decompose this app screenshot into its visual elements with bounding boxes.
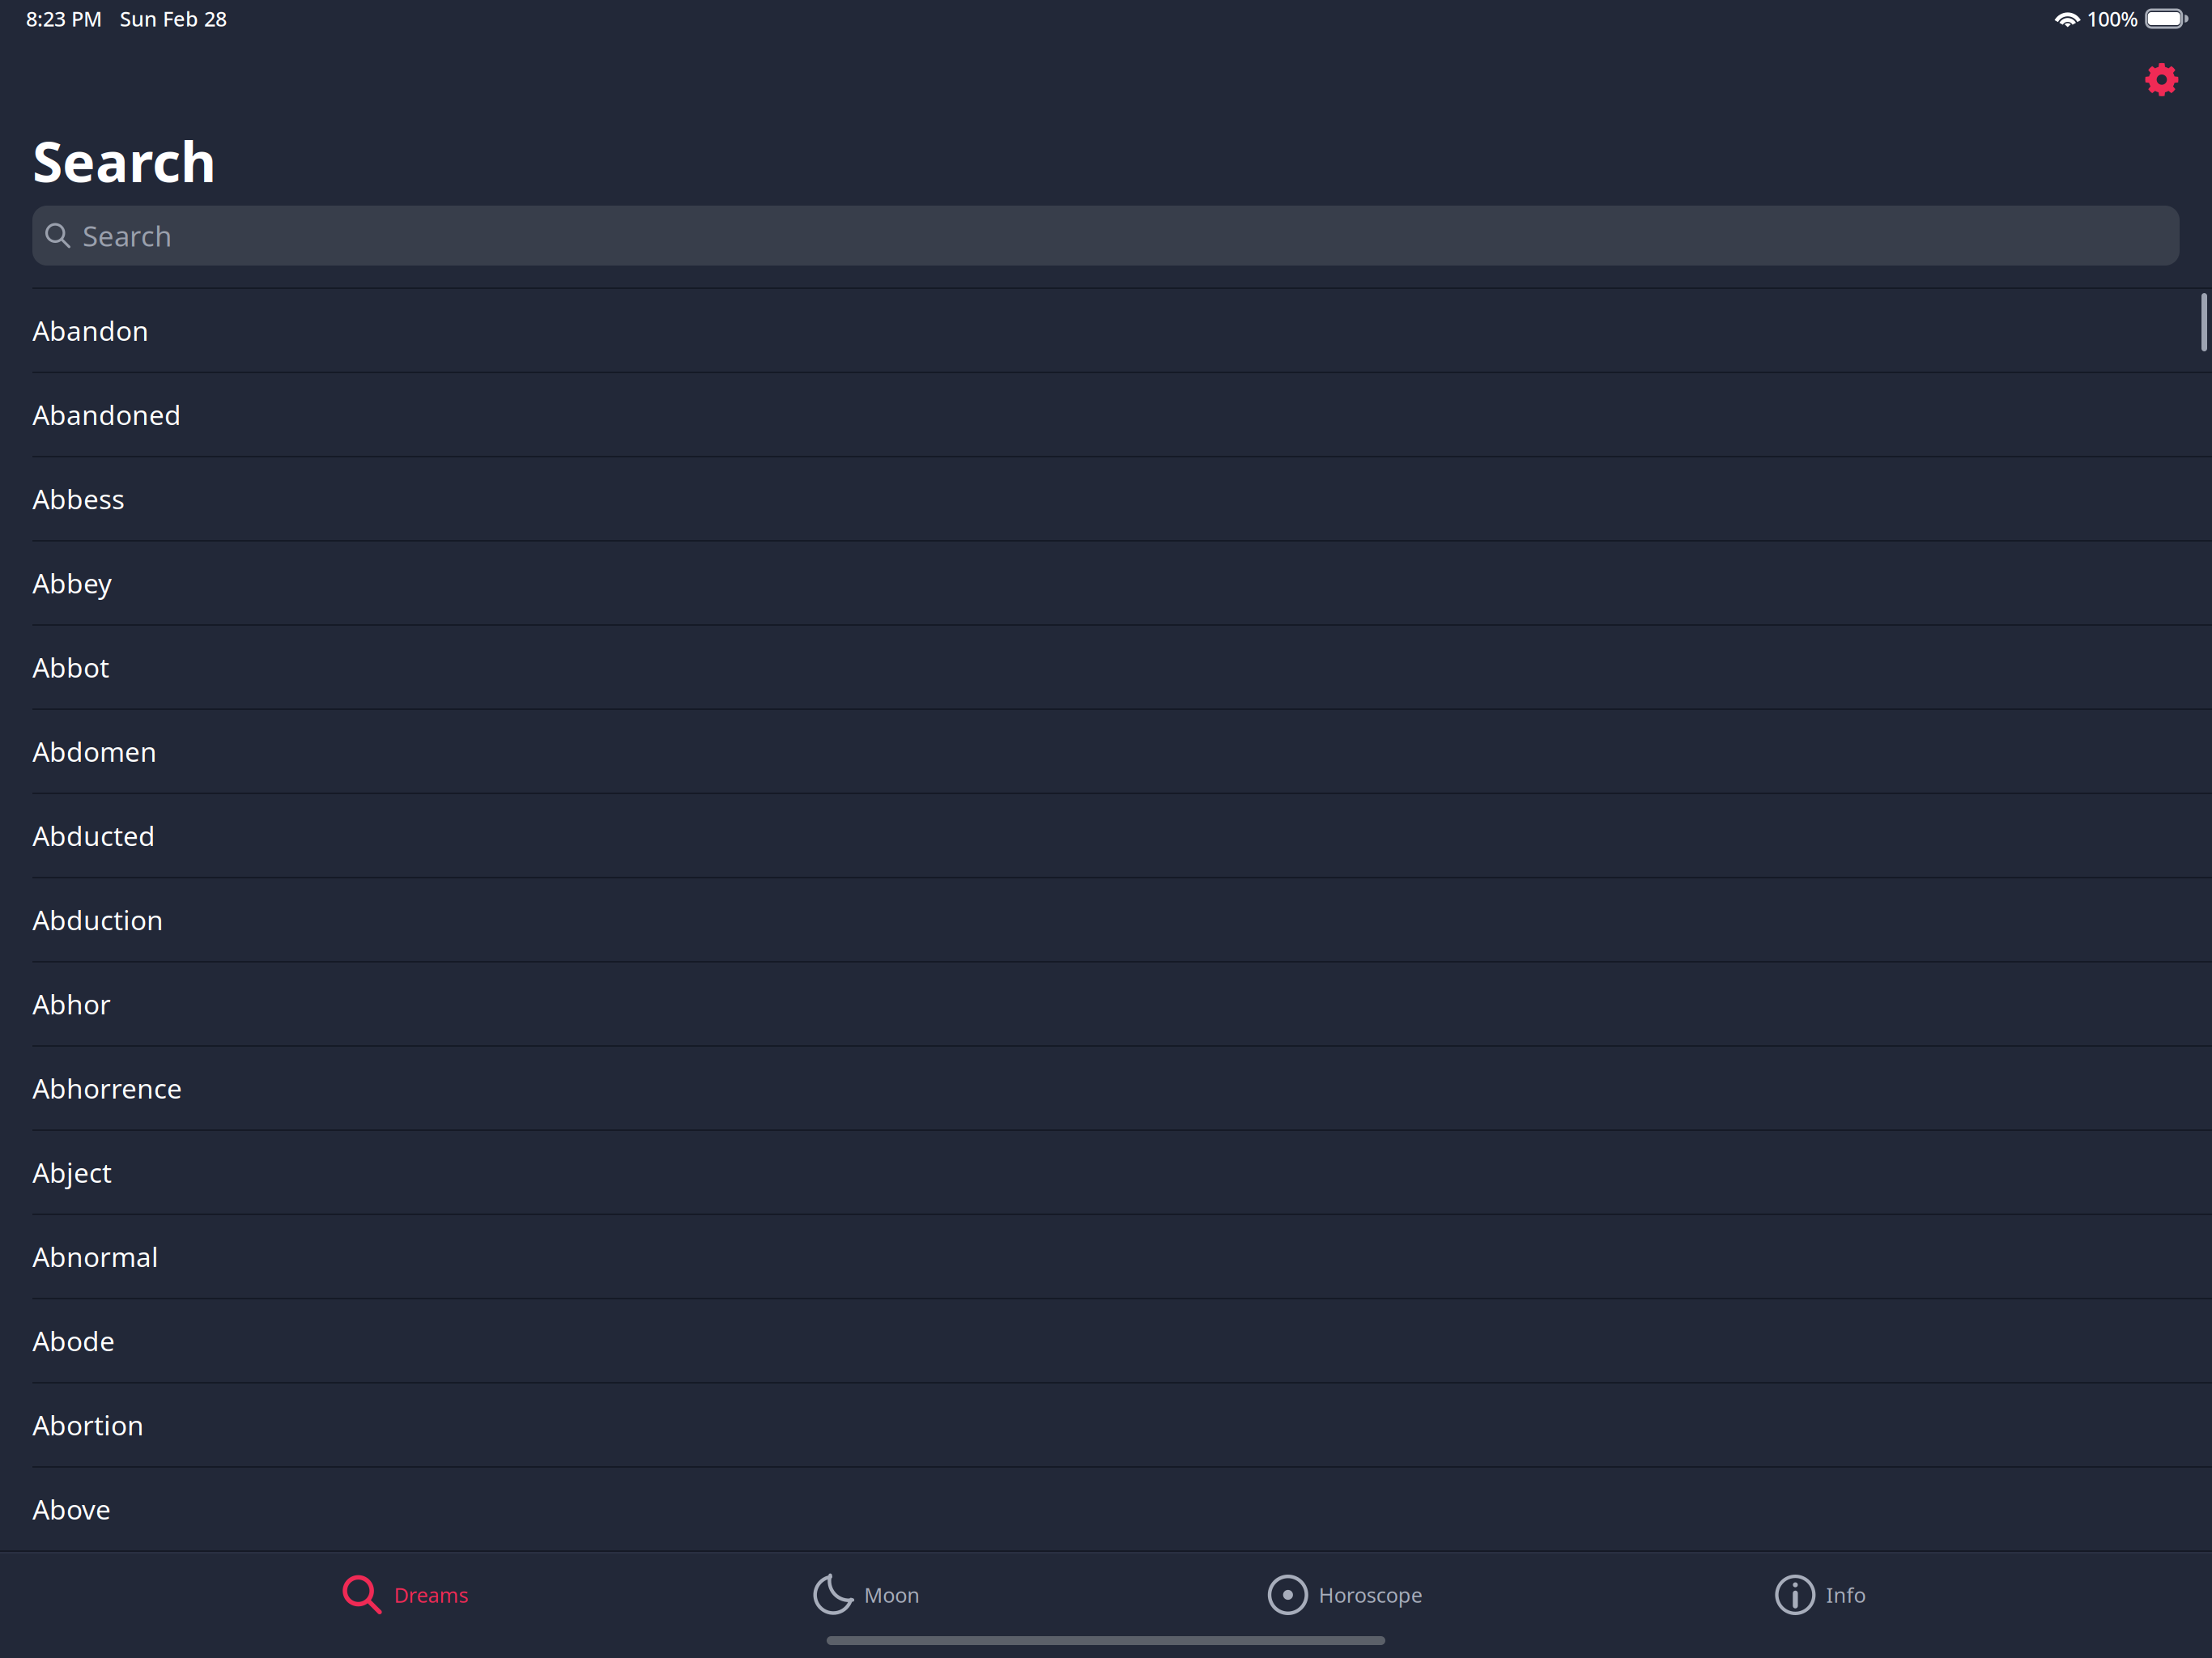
button[interactable]: Abdomen <box>0 710 2212 793</box>
staticText: Abandon <box>32 312 149 348</box>
button[interactable]: Info <box>1775 1559 1882 1630</box>
button[interactable]: Abhorrence <box>0 1047 2212 1129</box>
staticText: Abducted <box>32 818 155 853</box>
staticText: Info <box>1826 1581 1866 1608</box>
button[interactable]: Abandon <box>0 289 2212 372</box>
staticText: Abhor <box>32 986 111 1022</box>
staticText: Sun Feb 28 <box>120 5 227 32</box>
button[interactable]: Moon <box>808 1559 938 1630</box>
staticText: Dreams <box>394 1581 468 1608</box>
staticText: Abject <box>32 1154 112 1190</box>
button[interactable]: Abbot <box>0 626 2212 708</box>
button[interactable]: Abode <box>0 1299 2212 1382</box>
button[interactable]: Search <box>32 206 2180 266</box>
staticText: Horoscope <box>1319 1581 1422 1608</box>
button[interactable]: Settings <box>2126 44 2197 115</box>
button[interactable]: Abduction <box>0 878 2212 961</box>
staticText: Moon <box>864 1581 920 1608</box>
staticText: Abnormal <box>32 1239 159 1274</box>
button[interactable]: Abject <box>0 1131 2212 1214</box>
staticText: Abortion <box>32 1407 144 1443</box>
button[interactable]: Dreams <box>330 1559 478 1630</box>
staticText: Abandoned <box>32 397 181 432</box>
staticText: Abode <box>32 1323 115 1359</box>
staticText: Abbot <box>32 649 109 685</box>
staticText: Abdomen <box>32 733 157 769</box>
button[interactable]: Abhor <box>0 963 2212 1045</box>
button[interactable]: Abbey <box>0 542 2212 624</box>
button[interactable]: Horoscope <box>1268 1559 1445 1630</box>
button[interactable]: Abortion <box>0 1384 2212 1466</box>
staticText: Above <box>32 1491 111 1527</box>
staticText: Search <box>83 217 172 254</box>
button[interactable]: Abandoned <box>0 373 2212 456</box>
staticText: Abbey <box>32 565 112 601</box>
staticText: 100% <box>2087 5 2138 32</box>
button[interactable]: Abnormal <box>0 1215 2212 1298</box>
button[interactable]: Abbess <box>0 457 2212 540</box>
staticText: Search <box>32 124 216 197</box>
button[interactable]: Above <box>0 1468 2212 1550</box>
button[interactable]: Abducted <box>0 794 2212 877</box>
staticText: 8:23 PM <box>26 5 102 32</box>
staticText: Abbess <box>32 481 125 517</box>
staticText: Abduction <box>32 902 164 938</box>
staticText: Abhorrence <box>32 1070 182 1106</box>
